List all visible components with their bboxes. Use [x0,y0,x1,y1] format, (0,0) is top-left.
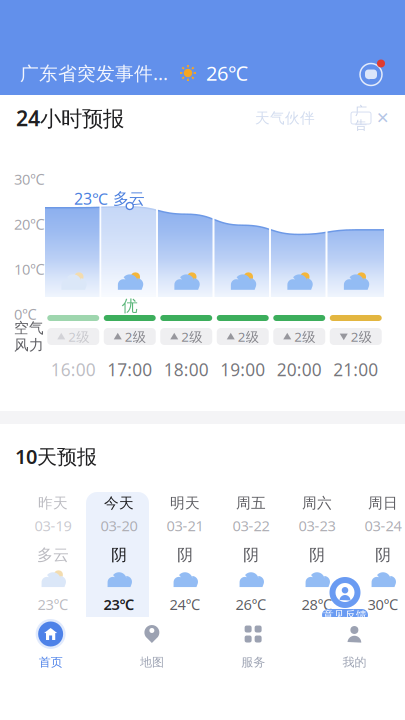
staticText: 首页 [39,655,63,670]
staticText: 23℃ [103,594,134,614]
staticText: 30℃ [367,594,398,614]
staticText: 优 [122,296,138,316]
staticText: 0℃ [14,304,37,324]
staticText: 天气伙伴 [255,109,315,127]
staticText: 地图 [140,655,164,670]
staticText: 21:00 [333,358,378,381]
staticText: 2级 [181,328,202,345]
staticText: 26℃ [235,594,266,614]
button[interactable]: 我的 [304,619,405,673]
staticText: 2级 [351,328,372,345]
staticText: 阴 [177,545,193,565]
button[interactable]: 意见反馈 [318,577,372,621]
button[interactable]: 服务 [202,619,304,673]
staticText: 我的 [342,655,366,670]
staticText: 23℃ [74,188,108,209]
staticText: 10天预报 [15,443,97,470]
staticText: 空气 [14,319,44,337]
staticText: 阴 [111,545,127,565]
staticText: 阴 [309,545,325,565]
staticText: 24小时预报 [16,104,124,132]
staticText: 2级 [68,328,89,345]
button[interactable]: 昨天 [20,492,86,630]
staticText: 明天 [170,494,200,512]
staticText: 26℃ [206,60,248,86]
staticText: 19:00 [220,358,265,381]
staticText: 多云 [113,189,145,208]
staticText: 多云 [37,545,69,565]
button[interactable]: 明天 [152,492,218,630]
button[interactable]: 周五 [218,492,284,630]
button[interactable]: 地图 [101,619,202,673]
staticText: 20:00 [277,358,322,381]
staticText: 周六 [302,494,332,512]
staticText: 17:00 [107,358,152,381]
staticText: 服务 [241,655,265,670]
staticText: 30℃ [14,169,45,189]
staticText: 03-24 [364,516,401,535]
staticText: 03-23 [298,516,335,535]
staticText: 2级 [294,328,315,345]
staticText: 20℃ [14,214,45,234]
button[interactable]: 关闭广告 [351,109,389,127]
staticText: 03-22 [232,516,269,535]
staticText: 广东省突发事件... [20,61,168,85]
staticText: 风力 [14,336,44,354]
staticText: 周五 [236,494,266,512]
staticText: 03-20 [100,516,137,535]
staticText: ✕ [376,109,389,127]
staticText: 今天 [104,494,134,512]
staticText: 18:00 [164,358,209,381]
staticText: 16:00 [51,358,96,381]
staticText: 阴 [375,545,391,565]
button[interactable]: 广东省突发事件... [20,60,248,86]
button[interactable]: 今天 [86,492,152,630]
staticText: 2级 [238,328,259,345]
staticText: 03-21 [166,516,203,535]
staticText: 03-19 [34,516,71,535]
staticText: 广告 [355,103,367,133]
staticText: 10℃ [14,259,45,279]
staticText: 周日 [368,494,398,512]
staticText: 2级 [125,328,146,345]
staticText: 23℃ [37,594,68,614]
button[interactable]: 周日 [350,492,405,630]
staticText: 28℃ [301,594,332,614]
button[interactable]: 首页 [0,619,101,673]
staticText: 昨天 [38,494,68,512]
staticText: 意见反馈 [323,608,367,621]
button[interactable]: 周六 [284,492,350,630]
staticText: 24℃ [169,594,200,614]
button[interactable]: 消息 [358,59,385,86]
staticText: 阴 [243,545,259,565]
